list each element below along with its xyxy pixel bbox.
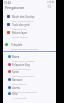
staticText: Rekam aktivitas xyxy=(12,36,29,38)
staticText: Ubah nama perangkat xyxy=(12,60,36,62)
staticText: Atur tampilan warna xyxy=(12,20,34,22)
staticText: Template xyxy=(11,43,23,47)
staticText: Bantuan xyxy=(12,78,23,82)
staticText: Rekam layar xyxy=(12,31,27,35)
staticText: Kirim masukan kamu xyxy=(12,75,34,77)
staticText: Pusat bantuan xyxy=(12,83,27,85)
button[interactable]: Saran xyxy=(3,68,56,75)
staticText: Pengaturan xyxy=(5,5,25,10)
staticText: Tools dan grid xyxy=(12,23,30,27)
staticText: Lisensi xyxy=(12,86,21,90)
button[interactable]: Versi xyxy=(3,90,56,97)
staticText: Pelaporan Bug xyxy=(12,63,30,67)
button[interactable]: Tools dan grid xyxy=(3,21,56,28)
staticText: Nama xyxy=(12,55,20,59)
button[interactable]: Template xyxy=(3,41,56,48)
staticText: 1.4.2 build 204 xyxy=(12,97,27,99)
staticText: Saran xyxy=(12,70,19,74)
staticText: Alat bantu kisi xyxy=(12,28,27,30)
button[interactable]: Pelaporan Bug xyxy=(3,61,56,68)
staticText: Lihat lisensi pihak ketiga xyxy=(12,91,38,93)
button[interactable]: Mode dan Overlay xyxy=(3,13,56,20)
staticText: Mode dan Overlay xyxy=(12,15,35,19)
button[interactable]: Lisensi xyxy=(3,84,56,91)
staticText: Kelola template tersimpan xyxy=(11,48,39,50)
staticText: 10:24 xyxy=(4,1,11,5)
button[interactable]: Bantuan xyxy=(3,76,56,83)
button[interactable]: Search xyxy=(47,4,52,9)
button[interactable]: Nama xyxy=(3,53,56,60)
staticText: Versi xyxy=(12,92,18,96)
staticText: Laporkan masalah xyxy=(12,68,31,70)
button[interactable]: Rekam layar xyxy=(3,29,56,36)
